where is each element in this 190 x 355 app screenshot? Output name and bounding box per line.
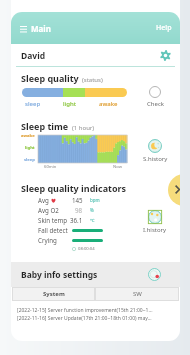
button[interactable]: Fall detect [36, 225, 103, 235]
staticText: Fall detect [38, 226, 68, 234]
staticText: Sleep time [21, 120, 69, 132]
staticText: 60min [44, 164, 57, 170]
button[interactable]: S.history [138, 138, 172, 164]
staticText: 36.1 [70, 216, 83, 224]
button[interactable]: Skin temp [36, 215, 85, 225]
staticText: Skin temp [38, 216, 68, 224]
staticText: Avg [38, 196, 49, 204]
staticText: David [21, 50, 46, 62]
button[interactable]: Check [138, 84, 172, 110]
staticText: Sleep quality [21, 72, 79, 84]
staticText: 145 [72, 196, 83, 204]
staticText: awake [99, 100, 118, 108]
staticText: Avg O2 [38, 206, 59, 214]
staticText: sleep [25, 100, 41, 108]
staticText: Sleep quality indicators [21, 182, 127, 194]
staticText: I.history [143, 226, 167, 234]
staticText: 98 [75, 206, 83, 214]
staticText: Crying [38, 236, 57, 244]
staticText: Now [113, 164, 122, 170]
button[interactable]: Help [148, 17, 180, 39]
staticText: sleep [24, 157, 35, 163]
button[interactable]: Baby info settings [11, 262, 180, 287]
staticText: 08:00:04 [78, 246, 95, 252]
staticText: Main [31, 23, 51, 34]
staticText: [2022-12-15] Server function improvement… [17, 307, 153, 314]
staticText: light [63, 100, 77, 108]
staticText: light [25, 145, 35, 151]
button[interactable]: System [12, 287, 95, 301]
button[interactable]: Crying [36, 235, 103, 245]
staticText: awake [21, 133, 35, 139]
staticText: bpm [90, 197, 100, 203]
staticText: System [43, 290, 65, 298]
staticText: [2022-11-16] Server Update(17th 21:00~18… [17, 315, 152, 322]
staticText: Help [156, 23, 172, 33]
staticText: (status) [82, 76, 103, 84]
staticText: (1 hour) [72, 124, 95, 132]
button[interactable]: Main [11, 17, 61, 40]
button[interactable]: Next [168, 174, 180, 206]
staticText: % [90, 207, 94, 213]
staticText: SW [133, 290, 142, 298]
button[interactable]: I.history [138, 209, 172, 235]
button[interactable]: SW [95, 287, 179, 301]
button[interactable]: Avg O2 [36, 205, 85, 215]
button[interactable]: Settings [157, 47, 173, 63]
staticText: Check [147, 100, 164, 108]
button[interactable]: Avg [36, 195, 85, 205]
staticText: Baby info settings [21, 269, 98, 281]
staticText: S.history [143, 155, 168, 163]
staticText: ℃ [90, 217, 95, 223]
